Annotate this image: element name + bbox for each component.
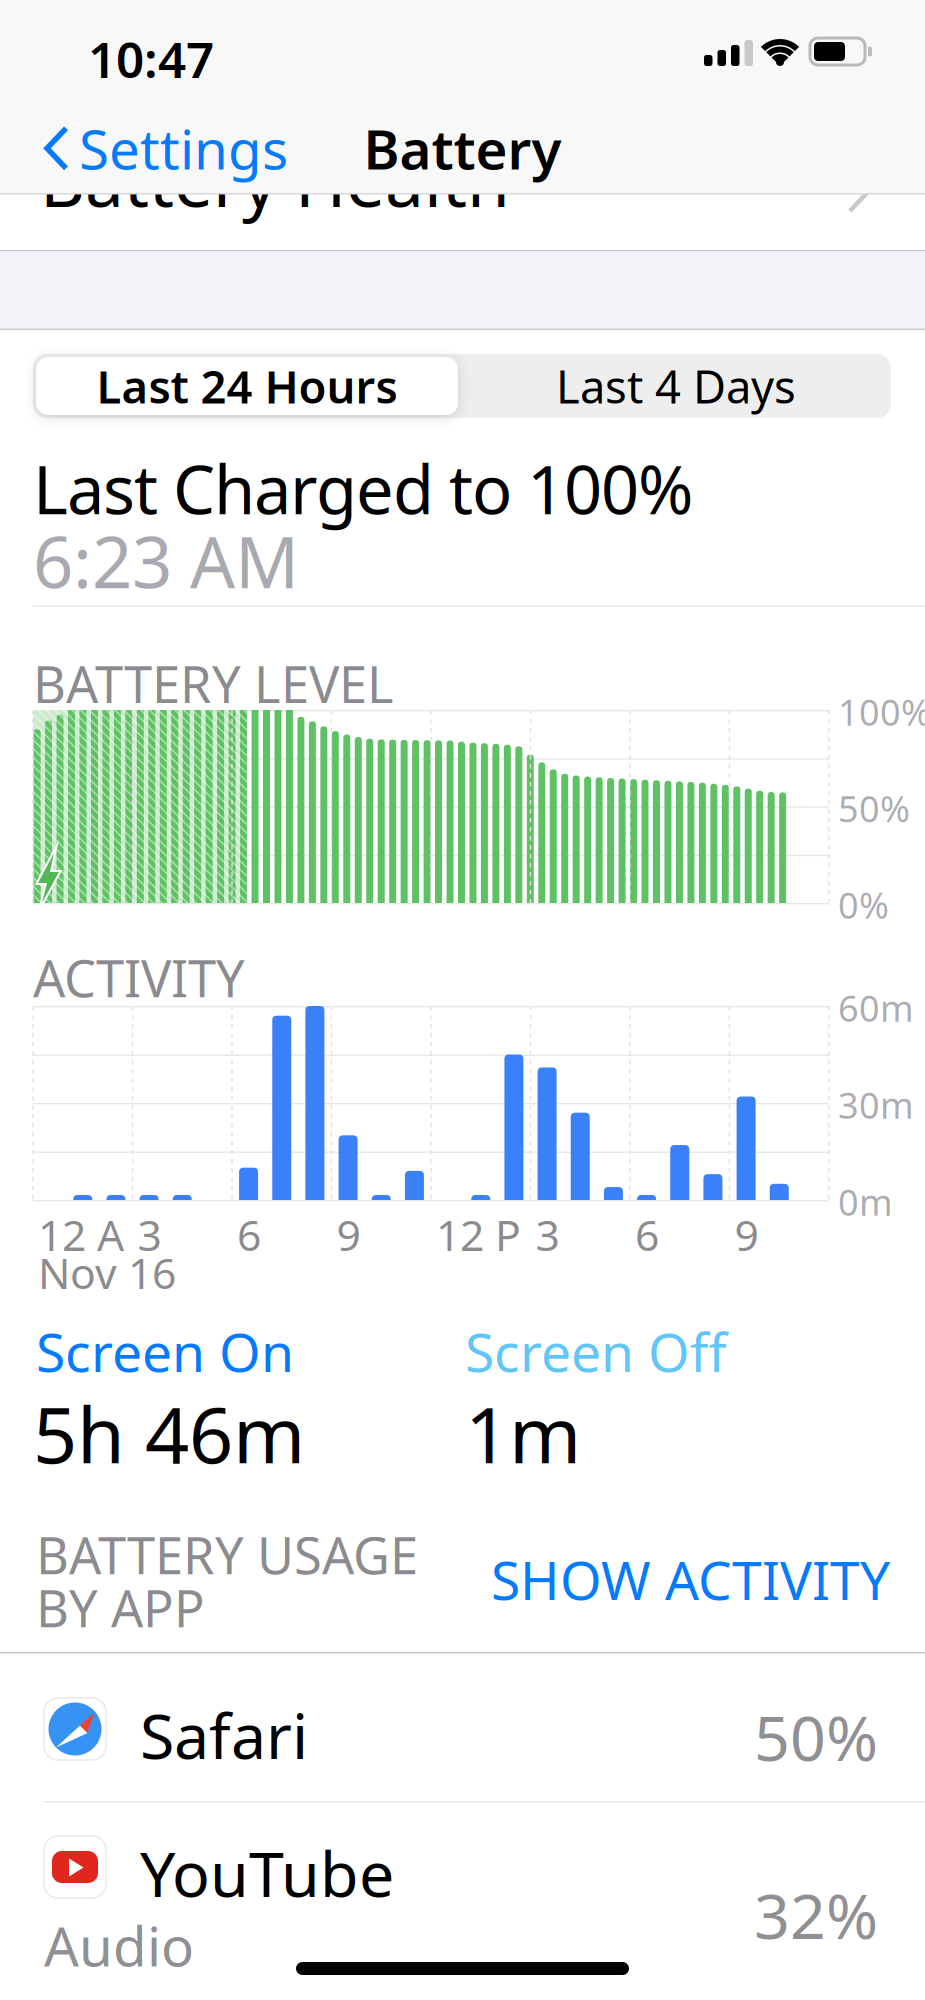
- staticText: 12 P: [436, 1206, 521, 1263]
- staticText: 6: [237, 1206, 261, 1263]
- button[interactable]: YouTube: [0, 1803, 925, 2000]
- staticText: Last 24 Hours: [96, 356, 397, 416]
- button[interactable]: Battery Health: [0, 134, 925, 244]
- staticText: BY APP: [36, 1574, 205, 1641]
- staticText: SHOW ACTIVITY: [491, 1544, 890, 1615]
- staticText: Settings: [79, 112, 288, 185]
- staticText: BATTERY USAGE: [36, 1521, 418, 1588]
- staticText: Battery Health: [40, 134, 510, 226]
- staticText: 1m: [465, 1382, 581, 1485]
- staticText: 100%: [838, 688, 925, 736]
- staticText: Safari: [140, 1693, 308, 1776]
- staticText: 32%: [754, 1873, 878, 1956]
- staticText: Nov 16: [38, 1244, 176, 1301]
- staticText: 6: [635, 1206, 659, 1263]
- staticText: 5h 46m: [33, 1382, 305, 1485]
- staticText: 9: [336, 1206, 360, 1263]
- staticText: 3: [137, 1206, 161, 1263]
- button[interactable]: SHOW ACTIVITY: [390, 1544, 890, 1615]
- button[interactable]: Last 4 Days: [465, 357, 887, 415]
- staticText: 6:23 AM: [33, 514, 299, 608]
- staticText: Last 4 Days: [556, 356, 796, 416]
- button[interactable]: Safari: [0, 1653, 925, 1801]
- button[interactable]: Last 24 Hours: [36, 357, 458, 415]
- button[interactable]: Settings: [37, 112, 288, 185]
- staticText: Last Charged to 100%: [33, 444, 693, 532]
- staticText: Battery: [363, 112, 561, 185]
- staticText: 10:47: [88, 26, 214, 91]
- staticText: 0%: [838, 881, 889, 929]
- staticText: Audio: [44, 1909, 194, 1982]
- staticText: ACTIVITY: [33, 944, 245, 1011]
- staticText: 30m: [838, 1081, 914, 1129]
- staticText: 12 A: [38, 1206, 124, 1263]
- staticText: 0m: [838, 1178, 893, 1226]
- staticText: 60m: [838, 984, 914, 1032]
- staticText: Screen On: [36, 1316, 294, 1387]
- staticText: 9: [734, 1206, 758, 1263]
- staticText: BATTERY LEVEL: [33, 650, 394, 717]
- staticText: Screen Off: [465, 1316, 727, 1387]
- staticText: YouTube: [140, 1831, 394, 1914]
- staticText: 50%: [754, 1695, 878, 1778]
- staticText: 50%: [838, 784, 910, 832]
- staticText: 3: [535, 1206, 559, 1263]
